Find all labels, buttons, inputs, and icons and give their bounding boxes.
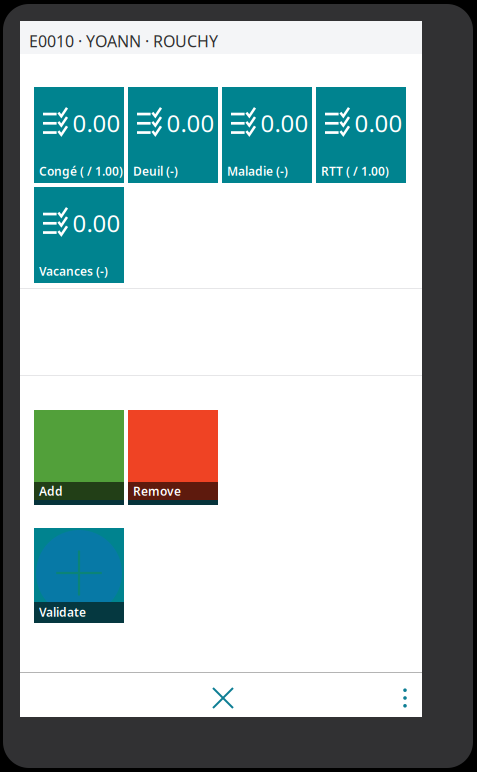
button[interactable]: Validate — [34, 528, 124, 623]
staticText: 0.00 — [260, 107, 308, 139]
button[interactable]: More options — [388, 676, 422, 720]
staticText: 0.00 — [166, 107, 214, 139]
button[interactable]: Close — [201, 676, 245, 720]
button[interactable]: 0.00 — [222, 87, 312, 183]
button[interactable]: E0010 · YOANN · ROUCHY — [20, 21, 218, 50]
staticText: Congé ( / 1.00) — [39, 163, 123, 179]
staticText: RTT ( / 1.00) — [321, 163, 389, 179]
staticText: Deuil (-) — [133, 163, 178, 179]
staticText: 0.00 — [72, 107, 120, 139]
staticText: Validate — [39, 604, 86, 620]
staticText: 0.00 — [72, 207, 120, 239]
staticText: Maladie (-) — [227, 163, 288, 179]
button[interactable]: 0.00 — [128, 87, 218, 183]
button[interactable]: 0.00 — [34, 87, 124, 183]
button[interactable]: 0.00 — [34, 187, 124, 283]
staticText: 0.00 — [354, 107, 402, 139]
button[interactable]: 0.00 — [316, 87, 406, 183]
staticText: E0010 · YOANN · ROUCHY — [29, 30, 218, 52]
staticText: Add — [39, 483, 63, 499]
staticText: Remove — [133, 483, 181, 499]
button[interactable]: Add — [34, 410, 124, 505]
button[interactable]: Remove — [128, 410, 218, 505]
staticText: Vacances (-) — [39, 263, 108, 279]
